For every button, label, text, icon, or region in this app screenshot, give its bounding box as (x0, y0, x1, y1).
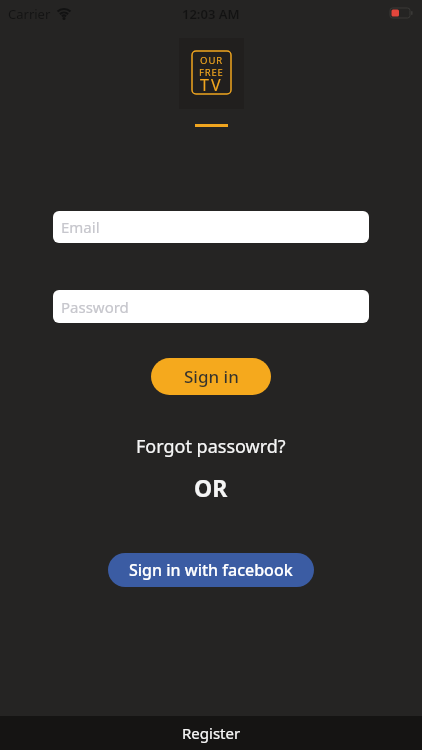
button[interactable]: Sign in (151, 358, 271, 395)
staticText: Password (61, 297, 129, 317)
staticText: Sign in (184, 365, 239, 388)
staticText: OUR (200, 54, 224, 67)
staticText: OR (194, 472, 228, 503)
staticText: 12:03 AM (182, 5, 240, 23)
button[interactable]: Password (53, 290, 369, 323)
button[interactable]: Email (53, 211, 369, 243)
staticText: FREE (199, 66, 224, 79)
button[interactable]: Forgot passowrd? (136, 434, 286, 459)
staticText: Register (182, 723, 241, 743)
staticText: Email (61, 217, 100, 237)
button[interactable]: Register (0, 716, 422, 750)
staticText: TV (200, 74, 223, 96)
button[interactable]: Sign in with facebook (108, 553, 314, 587)
staticText: Sign in with facebook (129, 559, 293, 581)
staticText: Carrier (8, 5, 51, 23)
staticText: Forgot passowrd? (136, 434, 286, 459)
